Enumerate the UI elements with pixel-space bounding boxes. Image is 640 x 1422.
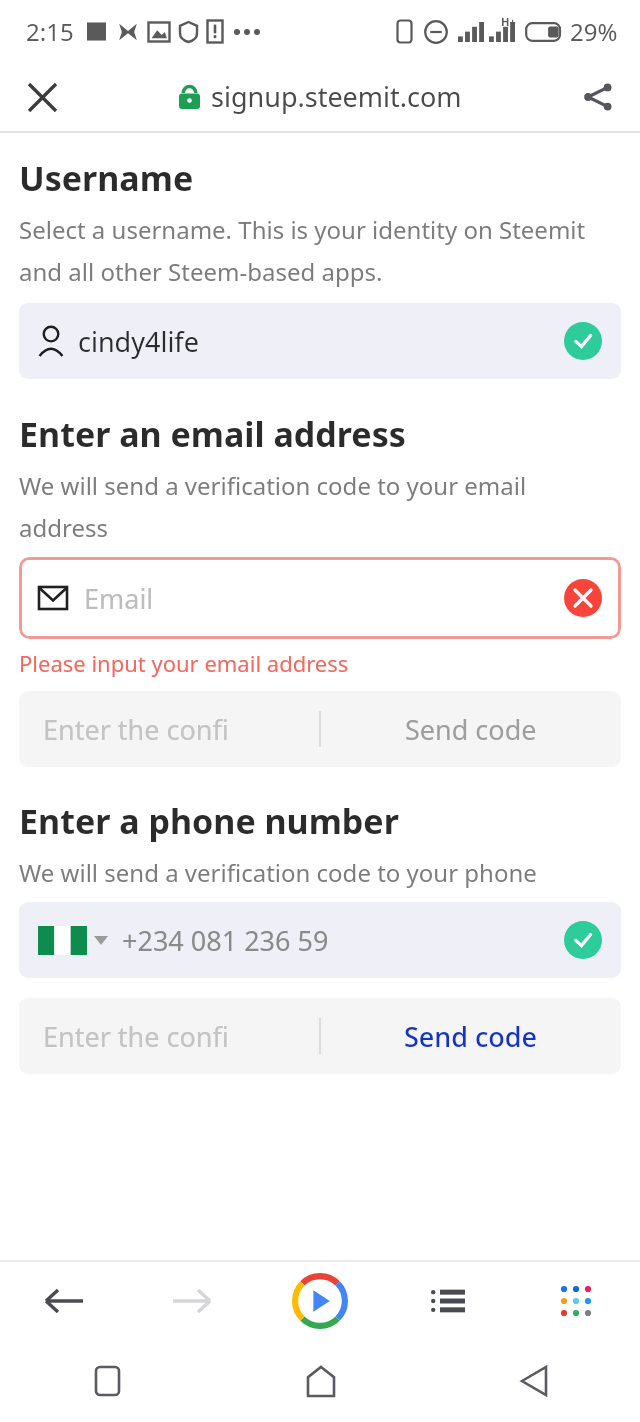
button[interactable]: Bookmarks — [417, 1270, 479, 1332]
button[interactable]: Clear email — [564, 579, 602, 617]
button[interactable]: Share — [570, 69, 626, 125]
staticText: We will send a verification code to your… — [19, 469, 621, 544]
staticText: 2:15 — [26, 15, 74, 48]
button[interactable]: Back — [33, 1270, 95, 1332]
button[interactable]: Apps — [545, 1270, 607, 1332]
staticText: Please input your email address — [19, 648, 349, 678]
button[interactable]: Send code — [321, 691, 621, 767]
button[interactable]: Enter the confi — [19, 691, 319, 767]
button[interactable]: Email — [19, 557, 621, 639]
staticText: signup.steemit.com — [211, 78, 462, 115]
button[interactable]: cindy4life — [19, 303, 621, 379]
staticText: Send code — [405, 711, 537, 748]
staticText: Enter an email address — [19, 411, 406, 457]
staticText: We will send a verification code to your… — [19, 856, 537, 889]
staticText: +234 081 236 59 — [122, 922, 329, 959]
staticText: Enter the confi — [43, 711, 229, 748]
button[interactable]: Forward — [161, 1270, 223, 1332]
staticText: Enter the confi — [43, 1018, 229, 1055]
button[interactable]: Enter the confi — [19, 998, 319, 1074]
button[interactable]: Recents — [77, 1351, 137, 1411]
staticText: cindy4life — [78, 323, 199, 360]
button[interactable]: Home — [291, 1351, 351, 1411]
staticText: Send code — [404, 1018, 538, 1055]
staticText: Select a username. This is your identity… — [19, 213, 621, 288]
button[interactable]: Play — [287, 1268, 353, 1334]
button[interactable]: Send code — [321, 998, 621, 1074]
staticText: Enter a phone number — [19, 798, 399, 844]
button[interactable]: +234 081 236 59 — [19, 902, 621, 978]
staticText: H+ — [501, 14, 516, 29]
staticText: Username — [19, 155, 194, 201]
button[interactable]: Back — [504, 1351, 564, 1411]
button[interactable]: Close — [14, 69, 70, 125]
staticText: Email — [84, 580, 154, 617]
staticText: 29% — [570, 15, 618, 48]
